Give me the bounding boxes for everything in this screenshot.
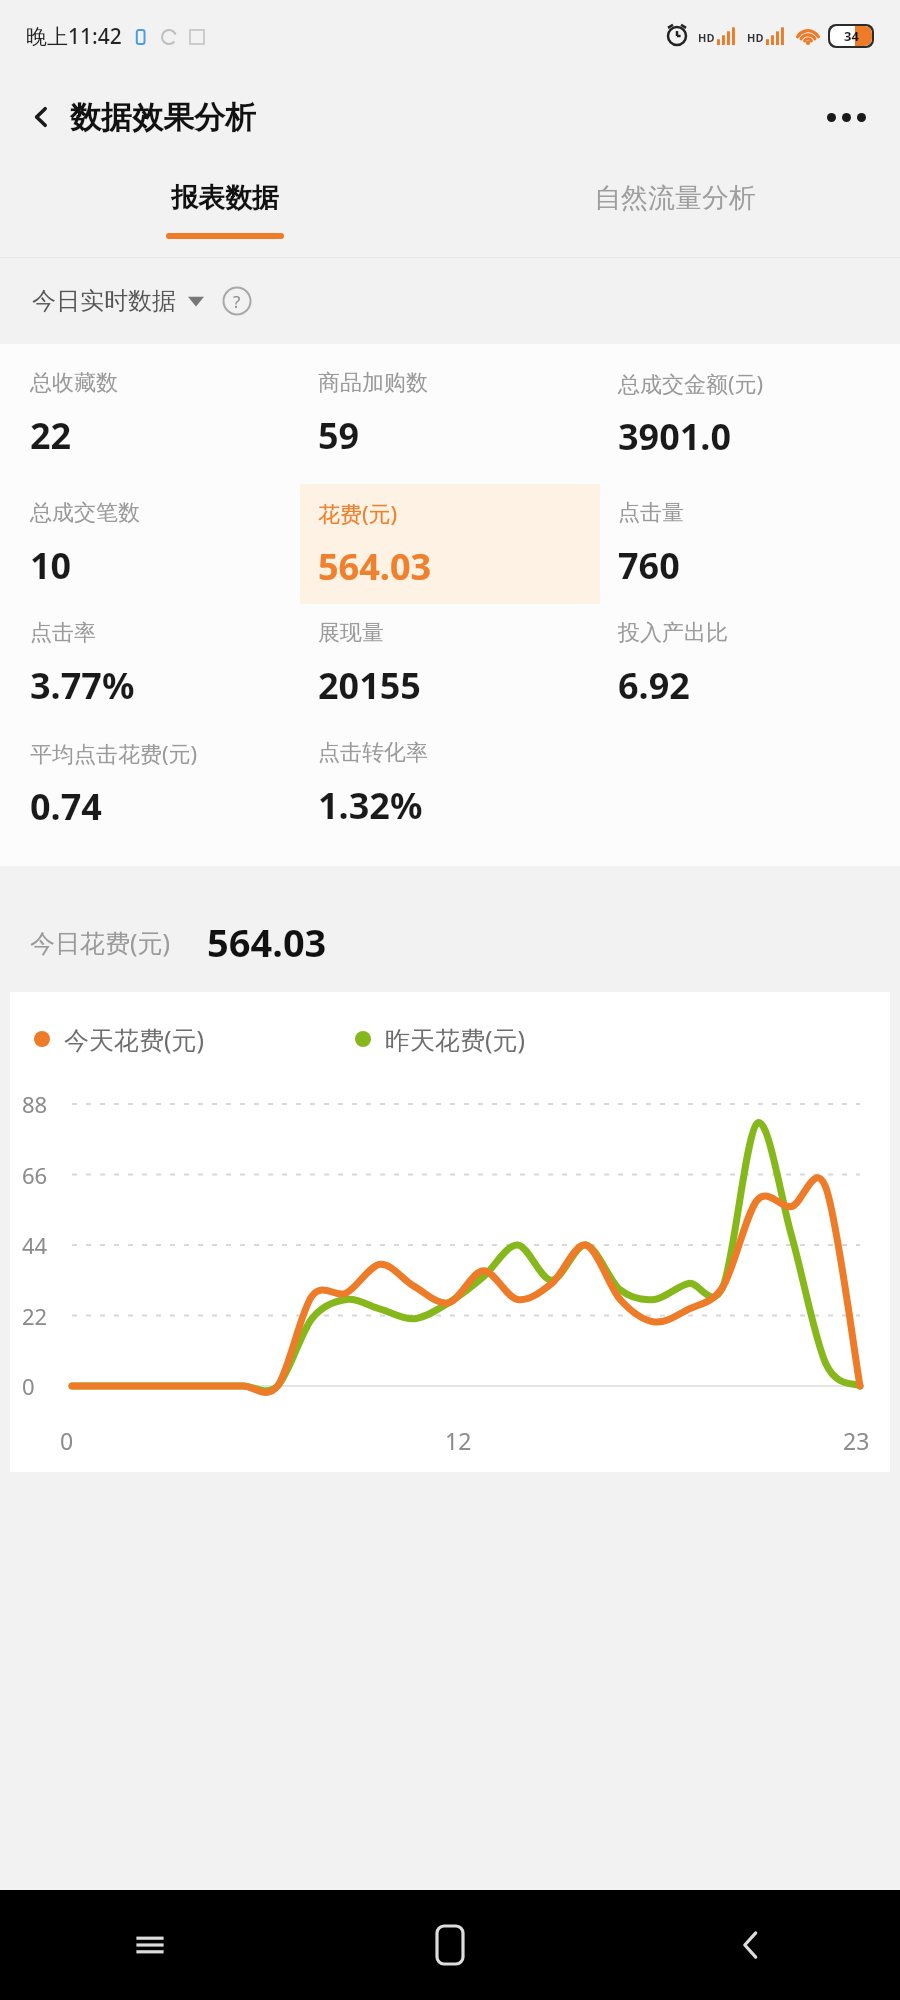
staticText: 0 [22, 1371, 35, 1401]
staticText: 34 [844, 27, 859, 45]
button[interactable]: 总成交笔数 [0, 484, 300, 604]
staticText: 6.92 [618, 661, 690, 710]
button[interactable]: 今日实时数据 [30, 278, 206, 324]
staticText: 3901.0 [618, 412, 732, 461]
button[interactable]: 点击量 [600, 484, 900, 604]
button[interactable]: 报表数据 [0, 162, 450, 257]
staticText: 今天花费(元) [64, 1022, 205, 1056]
staticText: 点击率 [30, 619, 96, 647]
staticText: 平均点击花费(元) [30, 738, 198, 768]
button[interactable]: 商品加购数 [300, 344, 600, 484]
button[interactable]: Back [20, 98, 62, 136]
staticText: 总收藏数 [30, 369, 118, 397]
staticText: 投入产出比 [618, 619, 728, 647]
button[interactable]: 总收藏数 [0, 344, 300, 484]
staticText: 今日花费(元) [30, 925, 171, 959]
staticText: 数据效果分析 [70, 98, 256, 137]
staticText: 商品加购数 [318, 369, 428, 397]
button[interactable]: More options [819, 105, 874, 130]
staticText: 点击量 [618, 499, 684, 527]
staticText: 760 [618, 541, 680, 590]
staticText: ? [233, 290, 241, 313]
staticText: HD [747, 30, 764, 45]
staticText: 1.32% [318, 781, 423, 830]
staticText: 点击转化率 [318, 739, 428, 767]
staticText: 22 [30, 411, 72, 460]
staticText: 0 [60, 1425, 74, 1456]
staticText: 报表数据 [171, 181, 279, 215]
staticText: 晚上11:42 [26, 22, 122, 51]
staticText: 自然流量分析 [594, 181, 756, 215]
button[interactable]: 花费(元) [300, 484, 600, 604]
staticText: 88 [22, 1089, 48, 1119]
button[interactable]: 点击率 [0, 604, 300, 724]
button[interactable]: Back [600, 1890, 900, 2000]
staticText: 花费(元) [318, 498, 398, 528]
staticText: 44 [22, 1230, 48, 1260]
staticText: 22 [22, 1301, 48, 1331]
button[interactable]: 点击转化率 [300, 724, 600, 844]
button[interactable]: 展现量 [300, 604, 600, 724]
button[interactable]: Help [222, 286, 252, 316]
staticText: 12 [445, 1425, 472, 1456]
button[interactable]: 平均点击花费(元) [0, 724, 300, 844]
staticText: 0.74 [30, 782, 102, 831]
button[interactable]: 总成交金额(元) [600, 344, 900, 484]
button[interactable]: 投入产出比 [600, 604, 900, 724]
staticText: 3.77% [30, 661, 135, 710]
button[interactable]: Home [300, 1890, 600, 2000]
staticText: 23 [843, 1425, 870, 1456]
staticText: HD [698, 30, 715, 45]
staticText: 59 [318, 411, 360, 460]
staticText: 总成交笔数 [30, 499, 140, 527]
staticText: 20155 [318, 661, 421, 710]
staticText: 66 [22, 1160, 48, 1190]
button[interactable]: Recents [0, 1890, 300, 2000]
staticText: 总成交金额(元) [618, 368, 764, 398]
staticText: 564.03 [207, 916, 327, 968]
staticText: 展现量 [318, 619, 384, 647]
staticText: 昨天花费(元) [385, 1022, 526, 1056]
staticText: 10 [30, 541, 72, 590]
staticText: 今日实时数据 [32, 286, 176, 316]
button[interactable]: 自然流量分析 [450, 162, 900, 257]
staticText: 564.03 [318, 542, 432, 591]
